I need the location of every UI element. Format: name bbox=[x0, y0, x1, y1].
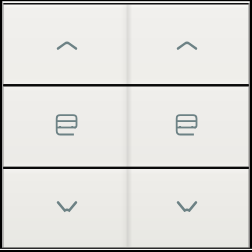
button[interactable]: Blind position left bbox=[3, 86, 125, 167]
button[interactable]: Blind position right bbox=[127, 86, 249, 167]
button[interactable]: Raise blind left bbox=[3, 4, 125, 84]
button[interactable]: Lower blind left bbox=[3, 169, 125, 248]
button[interactable]: Lower blind right bbox=[127, 169, 249, 248]
button[interactable]: Raise blind right bbox=[127, 4, 249, 84]
